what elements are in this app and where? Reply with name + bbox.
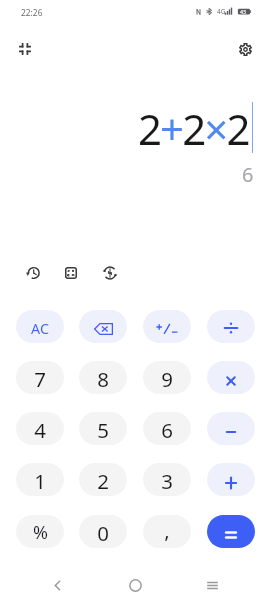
button[interactable]: Plus [207,463,255,496]
button[interactable]: 8 [79,361,127,394]
button[interactable]: AC [16,310,64,343]
staticText: 6 [242,161,254,188]
button[interactable]: History [20,260,46,286]
button[interactable]: Unit converter [58,260,84,286]
staticText: 2+2×2 [138,100,249,157]
staticText: 4 [34,416,46,444]
staticText: 7 [34,365,46,393]
button[interactable]: Recents [199,572,225,598]
staticText: 43 [240,8,246,15]
staticText: 2 [97,467,109,495]
staticText: 0 [97,519,109,547]
button[interactable]: 6 [143,412,191,445]
button[interactable]: Minus [207,412,255,445]
button[interactable]: Back [44,572,70,598]
button[interactable]: Divide [207,310,255,343]
button[interactable]: 3 [143,463,191,496]
button[interactable]: 1 [16,463,64,496]
staticText: 1 [34,467,46,495]
button[interactable]: 7 [16,361,64,394]
button[interactable]: 0 [79,515,127,548]
button[interactable]: Collapse [12,36,37,61]
staticText: 9 [161,365,173,393]
button[interactable]: Home [122,572,148,598]
button[interactable]: Settings [232,36,258,62]
staticText: 22:26 [21,7,43,18]
staticText: 8 [97,365,109,393]
staticText: 5 [97,416,109,444]
button[interactable]: 2 [79,463,127,496]
button[interactable]: Currency converter [97,260,123,286]
button[interactable]: 4 [16,412,64,445]
button[interactable]: Plus minus [143,310,191,343]
staticText: 4G [217,7,226,16]
button[interactable]: Equals [207,515,255,548]
staticText: , [164,516,170,544]
button[interactable]: Multiply [207,361,255,394]
button[interactable]: 9 [143,361,191,394]
staticText: 6 [161,416,173,444]
staticText: AC [31,319,49,338]
button[interactable]: % [16,515,64,548]
staticText: 3 [161,467,173,495]
staticText: % [33,520,48,545]
button[interactable]: , [143,515,191,548]
button[interactable]: 5 [79,412,127,445]
button[interactable]: Backspace [79,310,127,343]
